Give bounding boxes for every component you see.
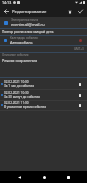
button[interactable]: Recents [62, 171, 74, 183]
staticText: Редактирование события [12, 8, 64, 14]
staticText: eventmail@mail.ru [11, 22, 45, 27]
staticText: 02.02.2021 10:30 [4, 91, 29, 95]
button[interactable]: Delete [64, 6, 75, 17]
staticText: Календарь события [10, 36, 38, 40]
button[interactable]: Описание события [0, 52, 87, 77]
button[interactable]: Электронная почта [0, 17, 87, 28]
staticText: Повтор расписания каждый день [2, 30, 54, 34]
button[interactable]: Back [13, 171, 25, 183]
button[interactable]: Home [38, 171, 50, 183]
button[interactable]: Remove [77, 102, 83, 108]
button[interactable]: Повтор расписания каждый день [0, 29, 87, 35]
staticText: За 30 минут до события [4, 95, 40, 99]
button[interactable]: GMT+3 [0, 45, 87, 52]
staticText: 02.02.2021 10:00 [4, 80, 29, 84]
staticText: 14:13 [2, 0, 12, 5]
button[interactable]: 02.02.2021 11:00 [0, 100, 87, 110]
staticText: За 1 час до события [4, 84, 34, 88]
button[interactable]: Save [75, 6, 86, 17]
button[interactable]: 02.02.2021 10:30 [0, 90, 87, 100]
button[interactable]: Back [0, 5, 12, 17]
button[interactable]: Календарь события [0, 35, 87, 45]
staticText: В указанное время события [4, 105, 47, 109]
button[interactable]: Remove [77, 92, 83, 98]
staticText: Режим сохранения [2, 58, 38, 63]
staticText: Электронная почта [11, 18, 39, 22]
staticText: 02.02.2021 11:00 [4, 101, 29, 105]
button[interactable]: 02.02.2021 10:00 [0, 79, 87, 89]
staticText: Описание события [2, 53, 29, 57]
staticText: Автомобиль [10, 40, 33, 45]
button[interactable]: Remove [77, 81, 83, 87]
staticText: GMT+3 [74, 47, 84, 51]
